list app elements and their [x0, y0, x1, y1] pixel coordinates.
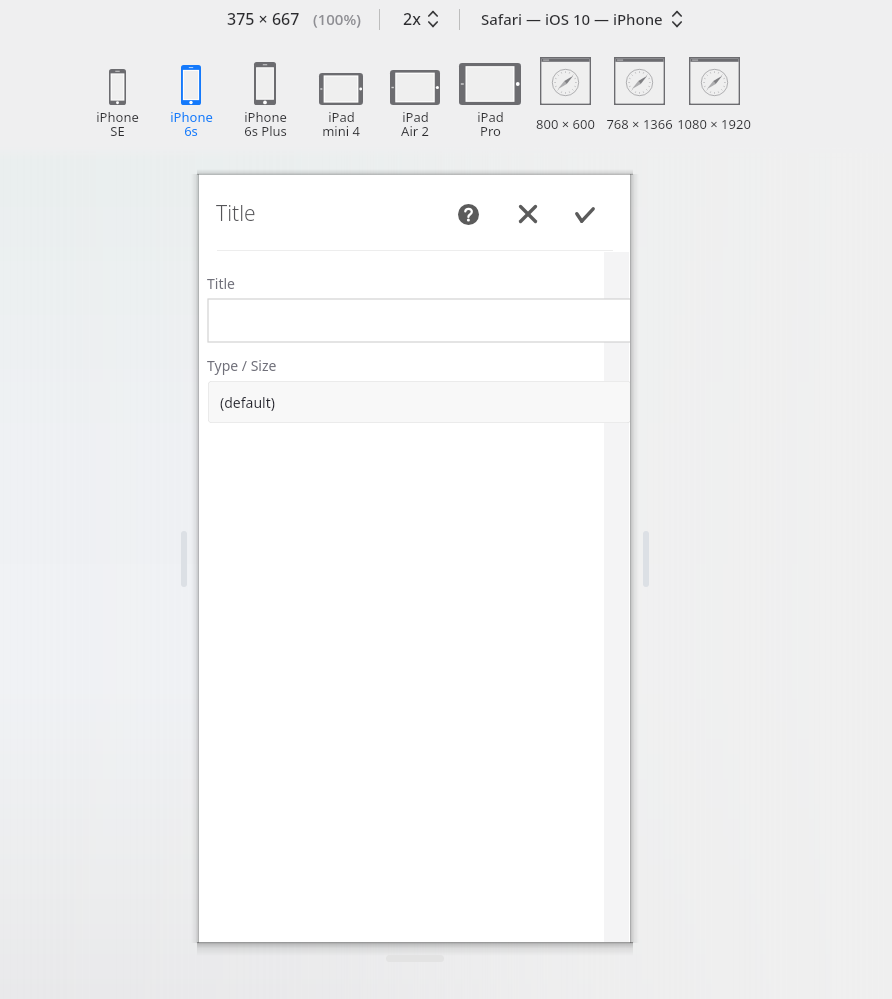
staticText: SE: [110, 122, 125, 140]
staticText: Air 2: [401, 122, 429, 140]
button[interactable]: 1080 × 1920: [674, 56, 754, 140]
staticText: iPad: [328, 108, 355, 126]
staticText: Title: [216, 199, 256, 228]
button[interactable]: 768 × 1366: [599, 56, 679, 140]
button[interactable]: iPhone: [77, 56, 157, 140]
staticText: Type / Size: [207, 356, 277, 375]
staticText: iPhone: [96, 108, 139, 126]
staticText: 6s Plus: [244, 122, 287, 140]
staticText: iPhone: [244, 108, 287, 126]
button[interactable]: 375 × 667: [227, 6, 361, 31]
staticText: (default): [220, 393, 275, 412]
staticText: Safari — iOS 10 — iPhone: [481, 9, 663, 29]
button[interactable]: Close: [512, 198, 544, 230]
staticText: mini 4: [322, 122, 360, 140]
staticText: (100%): [313, 9, 361, 29]
staticText: 1080 × 1920: [677, 115, 751, 133]
staticText: Pro: [480, 122, 501, 140]
button[interactable]: 800 × 600: [525, 56, 605, 140]
button[interactable]: 2x: [403, 6, 439, 31]
button[interactable]: iPad: [301, 56, 381, 140]
staticText: iPhone: [170, 108, 213, 126]
button[interactable]: iPad: [450, 56, 530, 140]
button[interactable]: Help: [452, 198, 484, 230]
staticText: 800 × 600: [536, 115, 595, 133]
staticText: 768 × 1366: [606, 115, 673, 133]
button[interactable]: iPhone: [151, 56, 231, 140]
button[interactable]: Save: [569, 199, 601, 231]
staticText: iPad: [402, 108, 429, 126]
staticText: iPad: [477, 108, 504, 126]
button[interactable]: iPad: [375, 56, 455, 140]
staticText: 6s: [184, 122, 198, 140]
button[interactable]: iPhone: [225, 56, 305, 140]
button[interactable]: Safari — iOS 10 — iPhone: [481, 6, 683, 31]
button[interactable]: [208, 299, 630, 342]
staticText: 375 × 667: [227, 8, 300, 30]
button[interactable]: (default): [208, 381, 630, 423]
staticText: Title: [207, 274, 235, 293]
staticText: 2x: [403, 8, 421, 30]
